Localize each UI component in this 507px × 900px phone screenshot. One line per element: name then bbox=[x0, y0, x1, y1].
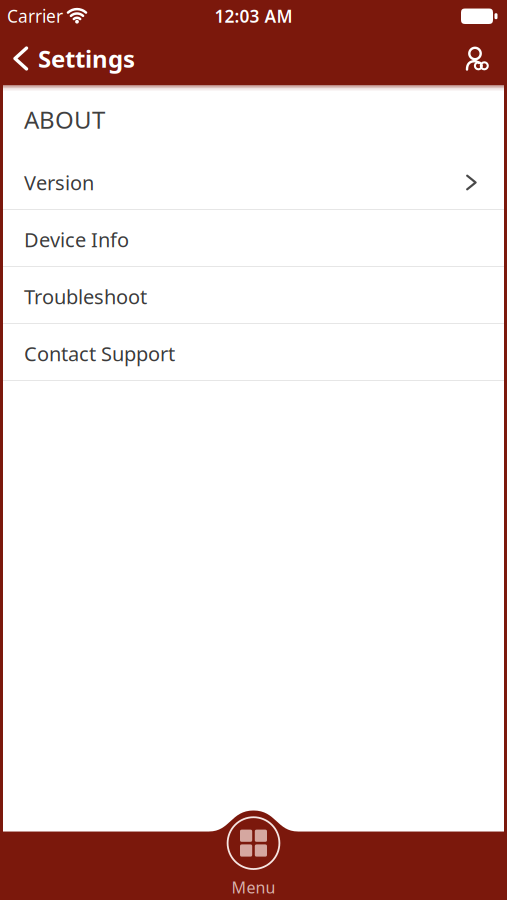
button[interactable]: Accounts bbox=[457, 40, 493, 76]
staticText: ABOUT bbox=[24, 104, 105, 135]
button[interactable]: Contact Support bbox=[3, 324, 504, 380]
button[interactable]: Back bbox=[0, 32, 135, 85]
staticText: 12:03 AM bbox=[214, 4, 292, 27]
staticText: Device Info bbox=[24, 226, 129, 253]
staticText: Carrier bbox=[7, 4, 63, 27]
staticText: Contact Support bbox=[24, 340, 175, 367]
button[interactable]: Menu bbox=[226, 816, 280, 898]
button[interactable]: Troubleshoot bbox=[3, 267, 504, 323]
staticText: Version bbox=[24, 169, 94, 196]
button[interactable]: Version bbox=[3, 153, 504, 209]
button[interactable]: Device Info bbox=[3, 210, 504, 266]
staticText: Troubleshoot bbox=[24, 283, 147, 310]
staticText: Settings bbox=[38, 43, 135, 74]
staticText: Menu bbox=[231, 877, 275, 898]
